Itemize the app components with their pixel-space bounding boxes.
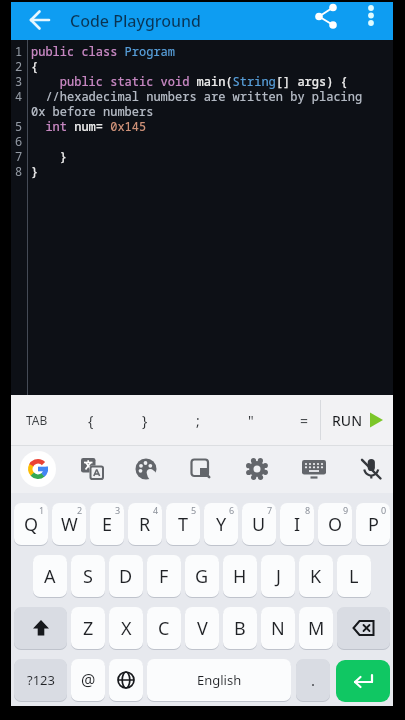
- button[interactable]: English: [147, 659, 291, 701]
- staticText: }: [31, 148, 68, 164]
- button[interactable]: F: [147, 555, 181, 597]
- button[interactable]: K: [299, 555, 333, 597]
- button[interactable]: ?123: [14, 659, 67, 701]
- button[interactable]: Y: [204, 503, 238, 545]
- staticText: X: [121, 616, 132, 641]
- staticText: A: [44, 564, 56, 589]
- button[interactable]: T: [166, 503, 200, 545]
- staticText: M: [308, 616, 325, 641]
- button[interactable]: [134, 457, 158, 481]
- button[interactable]: ;: [180, 400, 216, 440]
- button[interactable]: [362, 4, 380, 30]
- staticText: 3: [15, 73, 23, 89]
- button[interactable]: [325, 400, 390, 440]
- staticText: public static void main(String[] args) {: [31, 73, 348, 89]
- button[interactable]: }: [127, 400, 163, 440]
- staticText: public class Program: [31, 43, 176, 59]
- button[interactable]: A: [33, 555, 67, 597]
- staticText: 6: [229, 504, 235, 516]
- button[interactable]: H: [223, 555, 257, 597]
- button[interactable]: =: [286, 400, 322, 440]
- staticText: ?123: [27, 671, 55, 689]
- staticText: @: [81, 669, 96, 691]
- staticText: U: [252, 512, 266, 537]
- button[interactable]: [80, 457, 104, 481]
- staticText: =: [300, 411, 309, 430]
- button[interactable]: L: [337, 555, 371, 597]
- staticText: 2: [77, 504, 83, 516]
- button[interactable]: [245, 457, 269, 481]
- button[interactable]: P: [356, 503, 390, 545]
- staticText: H: [233, 564, 247, 589]
- staticText: F: [159, 564, 169, 589]
- button[interactable]: W: [52, 503, 86, 545]
- button[interactable]: [315, 4, 339, 28]
- staticText: int num= 0x145: [31, 118, 147, 134]
- staticText: English: [197, 671, 242, 689]
- button[interactable]: Q: [14, 503, 48, 545]
- button[interactable]: [190, 458, 212, 480]
- button[interactable]: [336, 660, 390, 702]
- staticText: 8: [305, 504, 311, 516]
- staticText: W: [61, 512, 78, 537]
- staticText: G: [195, 564, 209, 589]
- button[interactable]: M: [299, 607, 333, 649]
- button[interactable]: J: [261, 555, 295, 597]
- button[interactable]: ": [233, 400, 269, 440]
- button[interactable]: [109, 659, 143, 701]
- button[interactable]: E: [90, 503, 124, 545]
- staticText: 8: [15, 163, 23, 179]
- button[interactable]: @: [71, 659, 105, 701]
- staticText: 9: [343, 504, 349, 516]
- button[interactable]: S: [71, 555, 105, 597]
- staticText: Z: [83, 616, 94, 641]
- staticText: I: [294, 512, 301, 537]
- button[interactable]: {: [73, 400, 109, 440]
- staticText: V: [197, 616, 208, 641]
- button[interactable]: D: [109, 555, 143, 597]
- staticText: T: [178, 512, 189, 537]
- staticText: 7: [267, 504, 273, 516]
- button[interactable]: U: [242, 503, 276, 545]
- staticText: Y: [216, 512, 227, 537]
- staticText: L: [349, 564, 359, 589]
- button[interactable]: B: [223, 607, 257, 649]
- button[interactable]: [301, 458, 327, 480]
- button[interactable]: C: [147, 607, 181, 649]
- staticText: ;: [196, 411, 200, 430]
- staticText: {: [88, 411, 94, 430]
- staticText: 7: [15, 148, 23, 164]
- button[interactable]: [20, 451, 56, 487]
- staticText: J: [276, 564, 281, 589]
- staticText: 4: [15, 88, 23, 104]
- staticText: B: [234, 616, 246, 641]
- button[interactable]: [337, 607, 390, 649]
- staticText: E: [102, 512, 113, 537]
- staticText: 4: [153, 504, 159, 516]
- staticText: 5: [15, 118, 23, 134]
- staticText: 6: [15, 133, 23, 149]
- staticText: P: [368, 512, 379, 537]
- button[interactable]: [360, 457, 382, 481]
- staticText: Q: [24, 512, 39, 537]
- button[interactable]: [29, 9, 51, 31]
- staticText: {: [31, 58, 39, 74]
- staticText: O: [328, 512, 343, 537]
- button[interactable]: O: [318, 503, 352, 545]
- button[interactable]: R: [128, 503, 162, 545]
- button[interactable]: Z: [71, 607, 105, 649]
- button[interactable]: TAB: [19, 400, 55, 440]
- staticText: N: [271, 616, 285, 641]
- staticText: R: [139, 512, 151, 537]
- button[interactable]: X: [109, 607, 143, 649]
- button[interactable]: .: [296, 659, 330, 701]
- staticText: 1: [15, 43, 23, 59]
- button[interactable]: I: [280, 503, 314, 545]
- button[interactable]: V: [185, 607, 219, 649]
- button[interactable]: N: [261, 607, 295, 649]
- button[interactable]: G: [185, 555, 219, 597]
- staticText: 5: [191, 504, 197, 516]
- button[interactable]: [14, 607, 67, 649]
- staticText: 2: [15, 58, 23, 74]
- staticText: 0: [381, 504, 387, 516]
